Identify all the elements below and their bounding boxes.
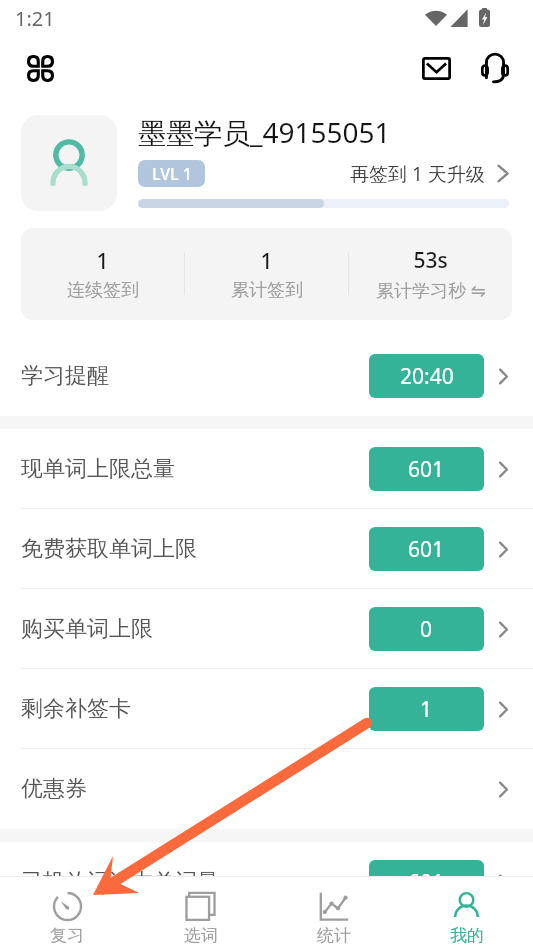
button[interactable]: Menu xyxy=(18,46,62,90)
staticText: 1 xyxy=(420,695,433,724)
button[interactable]: 优惠券 xyxy=(0,749,533,829)
staticText: 优惠券 xyxy=(21,775,87,803)
staticText: 剩余补签卡 xyxy=(21,695,131,723)
button[interactable]: 免费获取单词上限 xyxy=(0,509,533,589)
staticText: 现单词上限总量 xyxy=(21,455,175,483)
button[interactable]: 已投放词汇本单词量 xyxy=(0,842,533,922)
staticText: 1:21 xyxy=(15,5,55,32)
staticText: 0 xyxy=(420,615,433,644)
button[interactable]: 剩余补签卡 xyxy=(0,669,533,749)
button[interactable]: 53s xyxy=(349,228,512,320)
staticText: 601 xyxy=(408,535,445,564)
button[interactable]: 购买单词上限 xyxy=(0,589,533,669)
staticText: 再签到 1 天升级 xyxy=(350,161,485,187)
staticText: 1 xyxy=(260,247,273,276)
staticText: 601 xyxy=(408,455,445,484)
button[interactable]: Mail xyxy=(414,46,458,90)
button[interactable]: 统计 xyxy=(267,877,400,947)
staticText: 我的 xyxy=(450,925,484,946)
button[interactable]: 现单词上限总量 xyxy=(0,429,533,509)
button[interactable]: 我的 xyxy=(400,877,533,947)
staticText: 累计签到 xyxy=(231,279,303,302)
staticText: 53s xyxy=(413,246,448,275)
staticText: 连续签到 xyxy=(67,279,139,302)
staticText: 601 xyxy=(408,868,445,897)
button[interactable]: 墨墨学员_49155051 xyxy=(0,100,533,211)
staticText: 选词 xyxy=(184,925,218,946)
staticText: 免费获取单词上限 xyxy=(21,535,197,563)
staticText: 复习 xyxy=(50,925,84,946)
button[interactable]: 学习提醒 xyxy=(0,336,533,416)
staticText: LVL 1 xyxy=(152,163,192,185)
button[interactable]: Customer support xyxy=(473,46,517,90)
staticText: 学习提醒 xyxy=(21,362,109,390)
staticText: 统计 xyxy=(317,925,351,946)
staticText: 20:40 xyxy=(400,362,454,391)
staticText: 1 xyxy=(96,247,109,276)
staticText: 累计学习秒 ⇋ xyxy=(376,278,486,303)
button[interactable]: 1 xyxy=(21,228,184,320)
button[interactable]: 1 xyxy=(185,228,348,320)
staticText: 已投放词汇本单词量 xyxy=(21,868,219,896)
button[interactable]: 复习 xyxy=(0,877,134,947)
staticText: 购买单词上限 xyxy=(21,615,153,643)
button[interactable]: 选词 xyxy=(134,877,267,947)
staticText: 墨墨学员_49155051 xyxy=(138,113,391,151)
